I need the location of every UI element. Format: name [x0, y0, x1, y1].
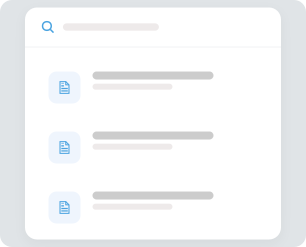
button[interactable]	[48, 71, 281, 103]
button[interactable]	[48, 191, 281, 223]
button[interactable]: Search	[40, 19, 56, 35]
button[interactable]	[48, 131, 281, 163]
button[interactable]: Search field	[56, 17, 159, 37]
